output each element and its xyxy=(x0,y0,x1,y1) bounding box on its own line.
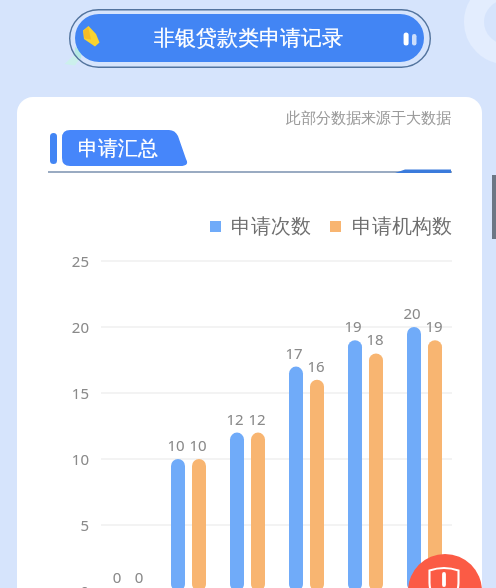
staticText: 10 xyxy=(61,449,89,469)
staticText: 申请汇总 xyxy=(78,136,158,161)
staticText: 0 xyxy=(61,581,89,588)
button[interactable]: 风险提示 xyxy=(408,554,482,588)
staticText: 19 xyxy=(339,316,367,336)
staticText: 10 xyxy=(162,435,190,455)
staticText: 申请机构数 xyxy=(352,214,452,239)
staticText: 非银贷款类申请记录 xyxy=(154,25,343,51)
staticText: 10 xyxy=(184,435,212,455)
staticText: 19 xyxy=(420,316,448,336)
staticText: 12 xyxy=(243,409,271,429)
staticText: 15 xyxy=(61,383,89,403)
staticText: 16 xyxy=(302,356,330,376)
button[interactable]: 非银贷款类申请记录 xyxy=(75,14,424,62)
staticText: 18 xyxy=(361,329,389,349)
staticText: 此部分数据来源于大数据 xyxy=(286,109,451,128)
staticText: 0 xyxy=(103,567,131,587)
staticText: 20 xyxy=(61,317,89,337)
staticText: 12 xyxy=(221,409,249,429)
staticText: 5 xyxy=(61,515,89,535)
staticText: 25 xyxy=(61,251,89,271)
staticText: 申请次数 xyxy=(231,214,311,239)
staticText: 0 xyxy=(125,567,153,587)
staticText: 20 xyxy=(398,303,426,323)
staticText: 17 xyxy=(280,343,308,363)
